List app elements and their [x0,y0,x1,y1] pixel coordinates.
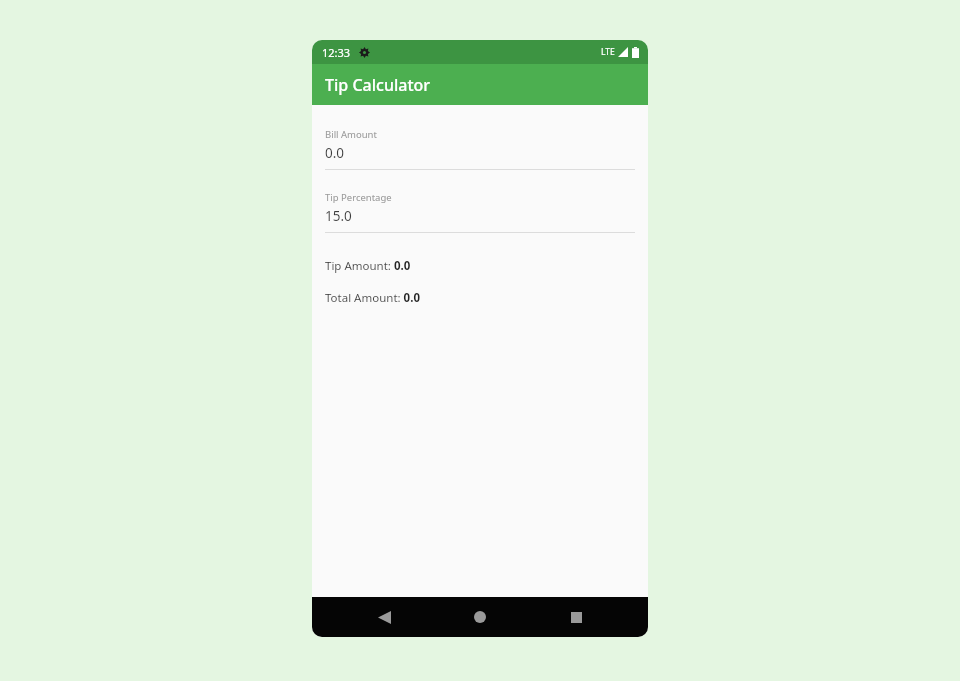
button[interactable]: Bill Amount [325,128,635,170]
button[interactable]: Home [456,597,504,637]
button[interactable]: Total Amount: 0.0 [325,290,420,306]
staticText: 12:33 [322,45,351,60]
staticText: 15.0 [325,207,352,225]
staticText: Tip Percentage [325,191,392,204]
button[interactable]: Recent apps [552,597,600,637]
staticText: Tip Amount: 0.0 [325,258,411,274]
staticText: LTE [601,46,615,58]
button[interactable]: Tip Amount: 0.0 [325,258,411,274]
staticText: Tip Calculator [325,74,431,96]
button[interactable]: Tip Percentage [325,191,635,233]
staticText: Total Amount: 0.0 [325,290,420,306]
button[interactable]: Back [360,597,408,637]
staticText: 0.0 [325,144,345,162]
staticText: Bill Amount [325,128,377,141]
